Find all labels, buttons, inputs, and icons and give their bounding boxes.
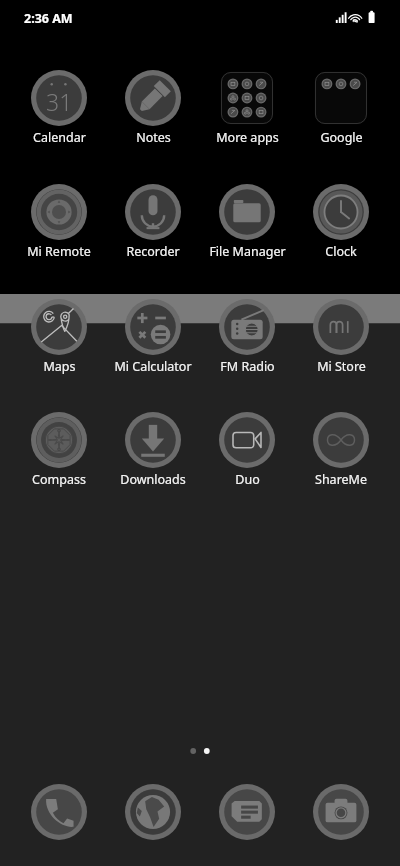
button[interactable]: Mi Remote xyxy=(12,184,106,260)
button[interactable]: Notes xyxy=(106,70,200,146)
button[interactable]: FM Radio xyxy=(200,299,294,375)
button[interactable]: Messages xyxy=(200,783,294,840)
staticText: ShareMe xyxy=(315,471,367,488)
button[interactable]: More apps xyxy=(200,70,294,146)
staticText: More apps xyxy=(216,129,279,146)
staticText: Recorder xyxy=(126,243,180,260)
button[interactable]: Compass xyxy=(12,412,106,488)
button[interactable]: Camera xyxy=(294,783,388,840)
button[interactable]: Downloads xyxy=(106,412,200,488)
staticText: Compass xyxy=(32,471,86,488)
staticText: Notes xyxy=(136,129,171,146)
button[interactable]: Mi Store xyxy=(294,299,388,375)
staticText: Mi Remote xyxy=(27,243,91,260)
staticText: Clock xyxy=(325,243,357,260)
staticText: Mi Store xyxy=(317,358,366,375)
staticText: Maps xyxy=(43,358,76,375)
button[interactable]: Recorder xyxy=(106,184,200,260)
button[interactable]: ShareMe xyxy=(294,412,388,488)
staticText: Downloads xyxy=(120,471,186,488)
button[interactable]: Mi Calculator xyxy=(106,299,200,375)
button[interactable]: Clock xyxy=(294,184,388,260)
button[interactable]: Browser xyxy=(106,783,200,840)
staticText: 31 xyxy=(46,86,73,117)
button[interactable]: Maps xyxy=(12,299,106,375)
staticText: Google xyxy=(320,129,363,146)
button[interactable]: Duo xyxy=(200,412,294,488)
staticText: 2:36 AM xyxy=(24,10,73,27)
staticText: Mi Calculator xyxy=(114,358,192,375)
button[interactable]: 31 xyxy=(12,70,106,146)
button[interactable]: Phone xyxy=(12,783,106,840)
staticText: Duo xyxy=(235,471,260,488)
staticText: Calendar xyxy=(33,129,86,146)
button[interactable]: File Manager xyxy=(200,184,294,260)
button[interactable]: Google xyxy=(294,70,388,146)
staticText: File Manager xyxy=(209,243,286,260)
staticText: FM Radio xyxy=(220,358,275,375)
